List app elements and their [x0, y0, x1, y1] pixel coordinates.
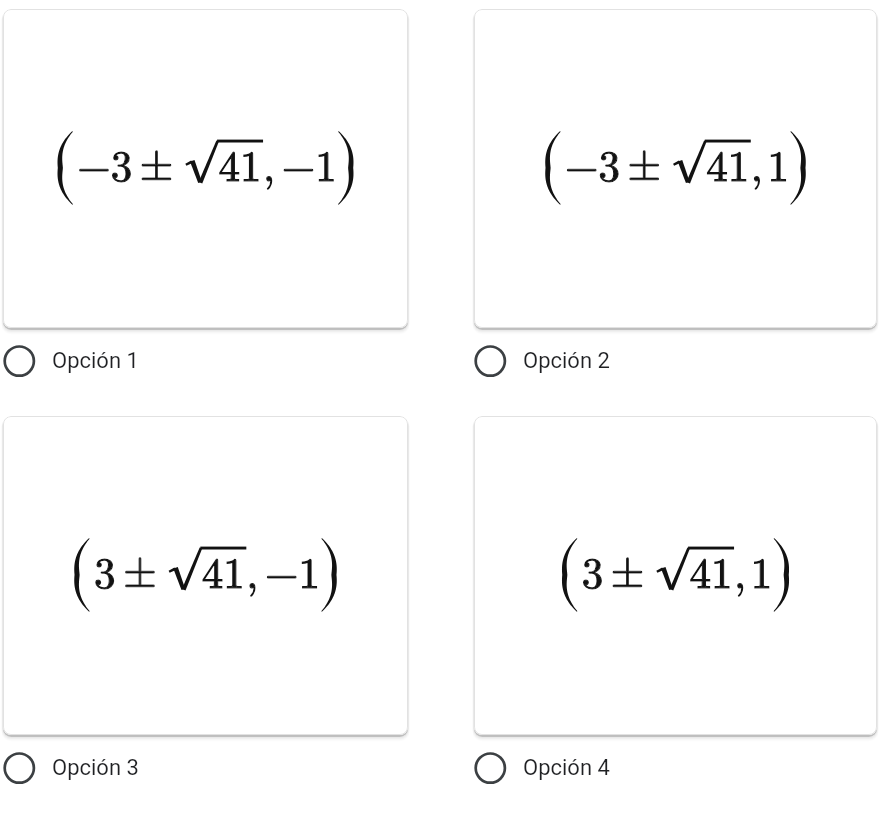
button[interactable]: 3 más menos raíz de 41, 1	[474, 416, 877, 735]
other: Seleccionar Opción 3	[3, 752, 34, 783]
button[interactable]: menos 3 más menos raíz de 41, menos 1	[3, 9, 408, 328]
staticText: Opción 1	[52, 348, 139, 374]
button[interactable]: menos 3 más menos raíz de 41, 1	[474, 9, 877, 328]
staticText: Opción 4	[523, 755, 610, 781]
button[interactable]: Seleccionar Opción 4	[474, 752, 877, 783]
other: Seleccionar Opción 4	[474, 752, 505, 783]
other: Seleccionar Opción 1	[3, 345, 34, 376]
button[interactable]: 3 más menos raíz de 41, menos 1	[3, 416, 408, 735]
staticText: Opción 3	[52, 755, 139, 781]
button[interactable]: Seleccionar Opción 1	[3, 345, 408, 376]
button[interactable]: Seleccionar Opción 3	[3, 752, 408, 783]
other: Seleccionar Opción 2	[474, 345, 505, 376]
staticText: Opción 2	[523, 348, 610, 374]
button[interactable]: Seleccionar Opción 2	[474, 345, 877, 376]
